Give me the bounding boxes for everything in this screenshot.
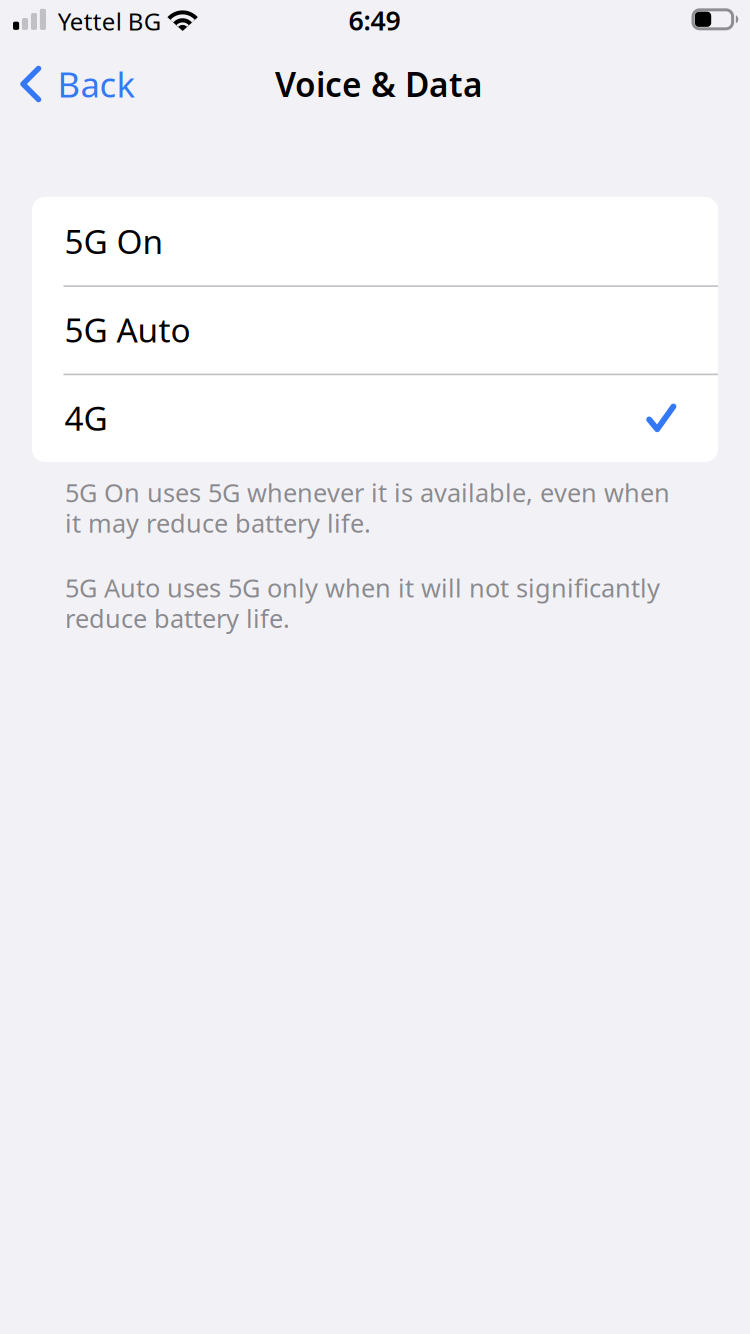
staticText: 5G Auto uses 5G only when it will not si… <box>65 571 660 635</box>
staticText: Voice & Data <box>275 62 483 106</box>
staticText: 5G On uses 5G whenever it is available, … <box>65 475 670 540</box>
button[interactable]: Back <box>0 49 151 119</box>
staticText: 6:49 <box>349 2 401 38</box>
staticText: 5G On <box>64 219 163 263</box>
staticText: Back <box>57 61 135 107</box>
button[interactable]: 5G Auto <box>32 285 718 374</box>
staticText: 5G Auto <box>64 307 190 352</box>
staticText: 4G <box>64 396 107 440</box>
button[interactable]: 5G On <box>32 197 718 285</box>
staticText: Yettel BG <box>58 5 161 37</box>
button[interactable]: 4G <box>32 374 718 462</box>
